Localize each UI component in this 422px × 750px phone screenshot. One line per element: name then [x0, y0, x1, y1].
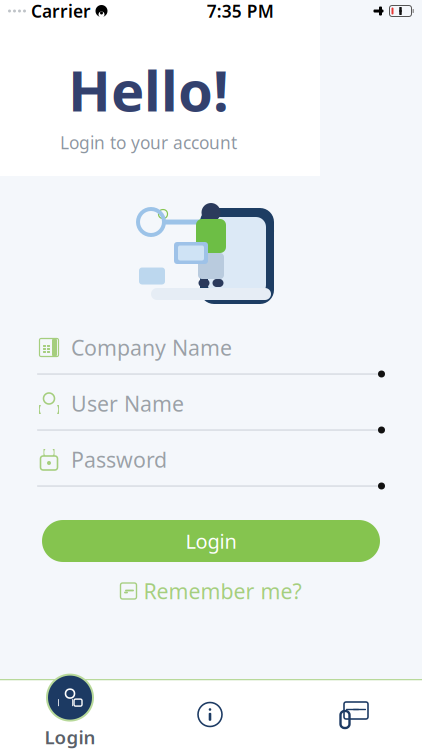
button[interactable]: Remember me? [120, 576, 301, 606]
button[interactable]: Password [37, 438, 385, 494]
staticText: User Name [71, 389, 184, 418]
staticText: Login to your account [60, 131, 237, 154]
staticText: 7:35 PM [207, 0, 274, 22]
staticText: Login [44, 725, 95, 749]
staticText: Hello! [68, 53, 229, 127]
staticText: Carrier [31, 0, 91, 22]
staticText: Remember me? [143, 577, 301, 605]
staticText: Company Name [71, 333, 232, 362]
button[interactable]: Information [140, 679, 280, 750]
button[interactable]: Login [0, 676, 140, 750]
button[interactable]: Login [42, 520, 380, 562]
button[interactable]: Contact us [280, 679, 422, 750]
button[interactable]: User Name [37, 382, 385, 438]
staticText: Password [71, 445, 167, 474]
button[interactable]: Company Name [37, 326, 385, 382]
staticText: Login [185, 528, 236, 554]
